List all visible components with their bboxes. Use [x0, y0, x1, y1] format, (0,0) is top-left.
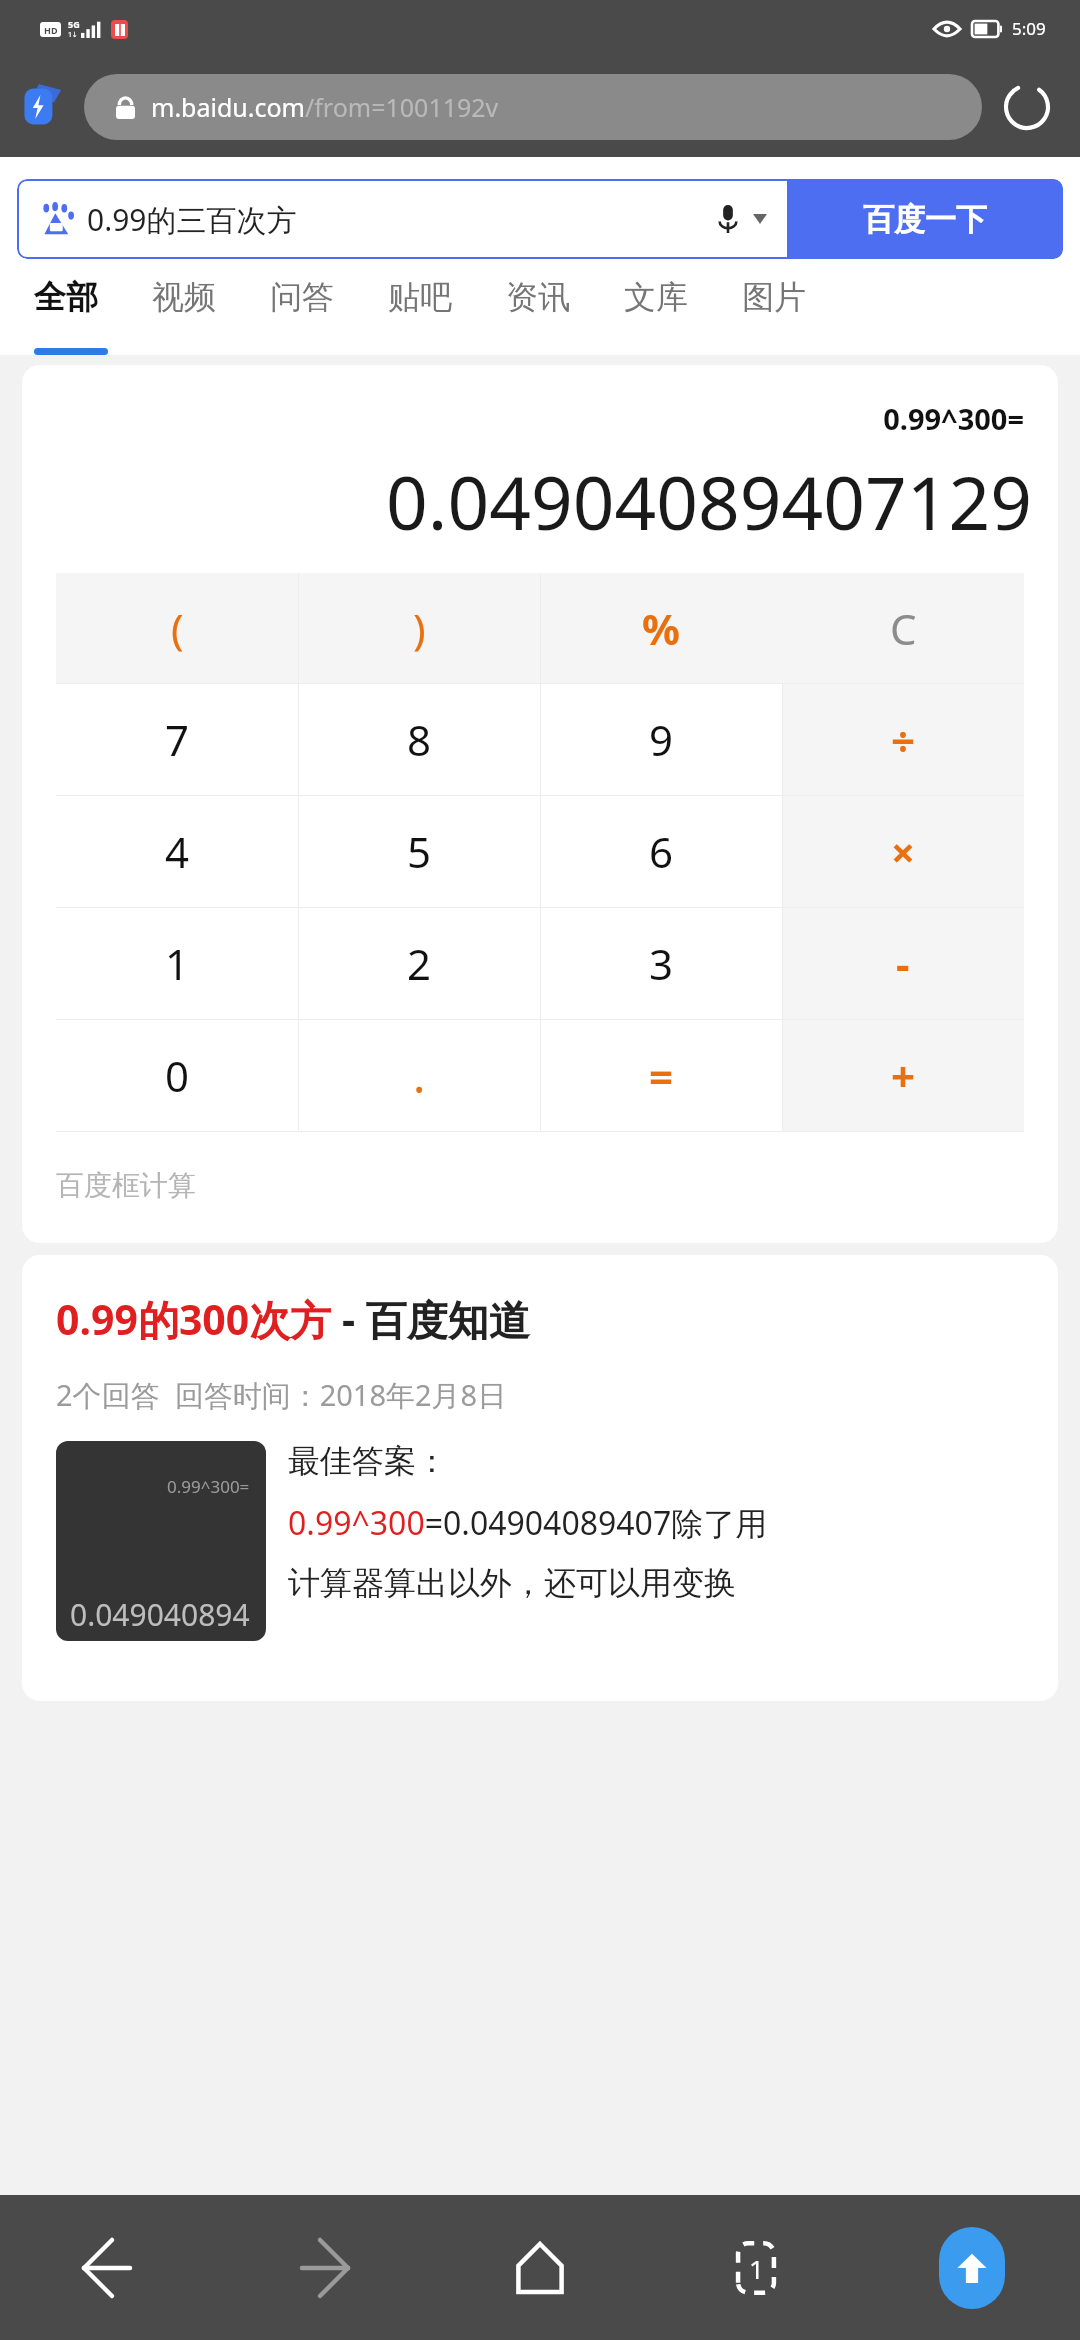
button[interactable]: Turbo [22, 84, 62, 130]
button[interactable]: ÷ [782, 684, 1024, 795]
button[interactable]: ( [56, 573, 298, 683]
staticText: 最佳答案： [288, 1441, 448, 1481]
staticText: 百度框计算 [56, 1168, 196, 1203]
button[interactable]: - [782, 908, 1024, 1019]
staticText: = [649, 1047, 674, 1104]
staticText: 0 [165, 1047, 190, 1104]
button[interactable]: Scroll to top [864, 2195, 1080, 2340]
staticText: + [891, 1047, 916, 1104]
button[interactable]: 8 [298, 684, 540, 795]
button[interactable]: 百度一下 [787, 179, 1063, 259]
staticText: 2 [407, 935, 432, 992]
button[interactable]: C [782, 573, 1024, 683]
button[interactable]: 9 [540, 684, 782, 795]
button[interactable]: 5 [298, 796, 540, 907]
staticText: 贴吧 [388, 277, 452, 317]
staticText: C [890, 600, 917, 657]
button[interactable]: × [782, 796, 1024, 907]
button[interactable]: 问答 [270, 277, 388, 317]
staticText: 6 [649, 823, 674, 880]
staticText: 8 [407, 711, 432, 768]
button[interactable]: % [540, 573, 782, 683]
staticText: 1↓ [68, 30, 78, 40]
button[interactable]: 0.99的300次方 - 百度知道 [22, 1255, 1058, 1701]
staticText: 0.04904089407129 [22, 452, 1032, 551]
button[interactable]: + [782, 1020, 1024, 1131]
staticText: 1 [749, 2251, 764, 2286]
button[interactable]: 资讯 [506, 277, 624, 317]
staticText: - [896, 935, 910, 992]
button[interactable]: Back [0, 2195, 216, 2340]
staticText: 7 [165, 711, 190, 768]
staticText: 0.99^300= [167, 1475, 250, 1498]
staticText: 0.99^300=0.04904089407除了用 [288, 1501, 768, 1545]
staticText: 1 [165, 935, 190, 992]
staticText: % [642, 600, 680, 657]
staticText: 4 [165, 823, 190, 880]
button[interactable]: 文库 [624, 277, 742, 317]
button[interactable]: Forward [216, 2195, 432, 2340]
staticText: ÷ [891, 711, 916, 768]
button[interactable]: 0 [56, 1020, 298, 1131]
staticText: 0.99的三百次方 [87, 199, 713, 240]
staticText: 全部 [34, 277, 98, 317]
button[interactable]: = [540, 1020, 782, 1131]
staticText: HD [44, 24, 58, 36]
staticText: 图片 [742, 277, 806, 317]
staticText: 5 [407, 823, 432, 880]
button[interactable]: . [298, 1020, 540, 1131]
button[interactable]: Reload [996, 76, 1058, 138]
staticText: 0.99^300= [22, 399, 1024, 438]
button[interactable]: Voice search [713, 204, 743, 234]
staticText: 百度一下 [863, 200, 987, 239]
button[interactable]: 7 [56, 684, 298, 795]
button[interactable]: 0.99的三百次方 [17, 179, 787, 259]
button[interactable]: 1 [56, 908, 298, 1019]
button[interactable]: 贴吧 [388, 277, 506, 317]
staticText: 9 [649, 711, 674, 768]
staticText: 3 [649, 935, 674, 992]
button[interactable]: 2 [298, 908, 540, 1019]
staticText: 5G [68, 18, 80, 30]
button[interactable]: 图片 [742, 277, 860, 317]
staticText: m.baidu.com/from=1001192v [151, 90, 499, 124]
button[interactable]: 全部 [34, 277, 152, 317]
button[interactable]: 视频 [152, 277, 270, 317]
staticText: . [413, 1044, 426, 1107]
staticText: ) [413, 600, 426, 657]
staticText: 文库 [624, 277, 688, 317]
button[interactable]: 3 [540, 908, 782, 1019]
button[interactable]: m.baidu.com/from=1001192v [84, 74, 982, 140]
staticText: 0.04904089407 [70, 1594, 266, 1635]
staticText: 5:09 [1012, 17, 1046, 40]
staticText: 0.99的300次方 - 百度知道 [56, 1291, 530, 1347]
button[interactable]: ) [298, 573, 540, 683]
button[interactable]: Tabs [648, 2195, 864, 2340]
staticText: 视频 [152, 277, 216, 317]
staticText: × [891, 823, 916, 880]
staticText: 资讯 [506, 277, 570, 317]
staticText: 2个回答 回答时间：2018年2月8日 [56, 1375, 507, 1415]
staticText: 问答 [270, 277, 334, 317]
staticText: ( [171, 600, 184, 657]
staticText: 计算器算出以外，还可以用变换 [288, 1563, 736, 1603]
button[interactable]: Home [432, 2195, 648, 2340]
button[interactable]: 6 [540, 796, 782, 907]
button[interactable]: 4 [56, 796, 298, 907]
